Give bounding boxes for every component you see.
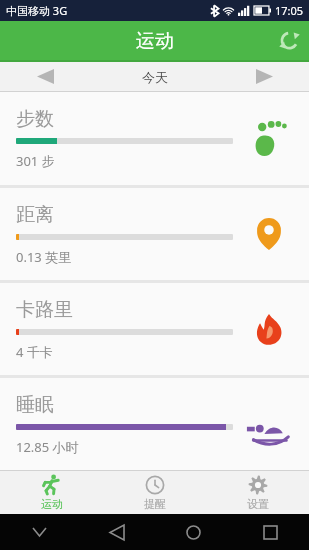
button[interactable]: 隐藏 [0,514,78,550]
staticText: 中国移动 3G [6,3,68,18]
button[interactable]: 运动 [0,471,103,514]
button[interactable]: 步数 [0,92,309,185]
button[interactable]: 前一天 [0,62,90,91]
staticText: 步数 [16,107,54,131]
staticText: 睡眠 [16,393,54,417]
button[interactable]: 主屏幕 [155,514,232,550]
staticText: 12.85 小时 [16,438,79,456]
staticText: 运动 [41,497,63,511]
button[interactable]: 后一天 [219,62,309,91]
button[interactable]: 距离 [0,188,309,280]
staticText: 距离 [16,203,54,227]
button[interactable]: 提醒 [103,471,206,514]
staticText: 设置 [247,497,269,511]
staticText: 17:05 [275,3,304,18]
staticText: 4 千卡 [16,343,53,361]
button[interactable]: 卡路里 [0,283,309,375]
staticText: 今天 [142,69,168,85]
staticText: 提醒 [144,497,166,511]
button[interactable]: 睡眠 [0,378,309,470]
button[interactable]: 最近任务 [232,514,309,550]
button[interactable]: 同步 [270,21,309,60]
staticText: 卡路里 [16,298,73,322]
button[interactable]: 设置 [206,471,309,514]
button[interactable]: 返回 [78,514,155,550]
staticText: 运动 [136,29,174,53]
staticText: 0.13 英里 [16,248,72,266]
staticText: 301 步 [16,152,55,170]
